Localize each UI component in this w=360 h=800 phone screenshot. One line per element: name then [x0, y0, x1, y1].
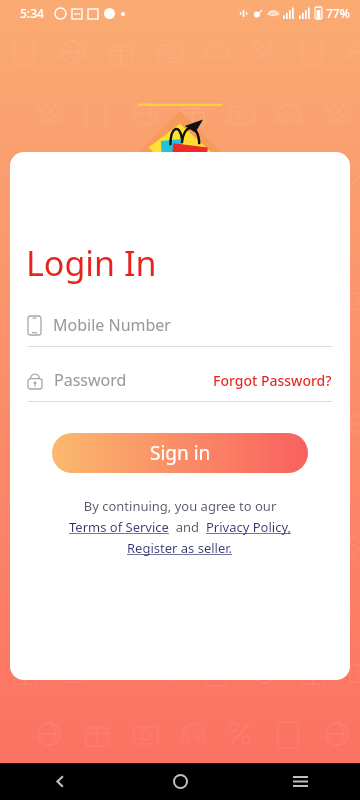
button[interactable]: Recent apps: [240, 763, 360, 800]
button[interactable]: Register as seller.: [127, 539, 233, 557]
staticText: and: [169, 518, 206, 536]
staticText: Forgot Password?: [213, 371, 332, 390]
staticText: 5:34: [20, 5, 44, 21]
button[interactable]: Terms of Service: [69, 518, 169, 536]
button[interactable]: Forgot Password?: [213, 371, 332, 390]
button[interactable]: Privacy Policy,: [206, 518, 292, 536]
staticText: Register as seller.: [127, 539, 233, 557]
staticText: Terms of Service: [69, 518, 169, 536]
button[interactable]: Password: [28, 369, 213, 391]
staticText: Login In: [26, 240, 157, 286]
button[interactable]: Sign in: [52, 433, 308, 473]
staticText: 77%: [326, 5, 350, 21]
staticText: Sign in: [150, 440, 211, 466]
button[interactable]: Mobile Number: [28, 314, 332, 347]
staticText: Mobile Number: [53, 314, 171, 336]
button[interactable]: Home: [120, 763, 240, 800]
staticText: Password: [54, 369, 127, 391]
staticText: By continuing, you agree to our: [10, 497, 350, 515]
button[interactable]: Back: [0, 763, 120, 800]
staticText: Privacy Policy,: [206, 518, 292, 536]
